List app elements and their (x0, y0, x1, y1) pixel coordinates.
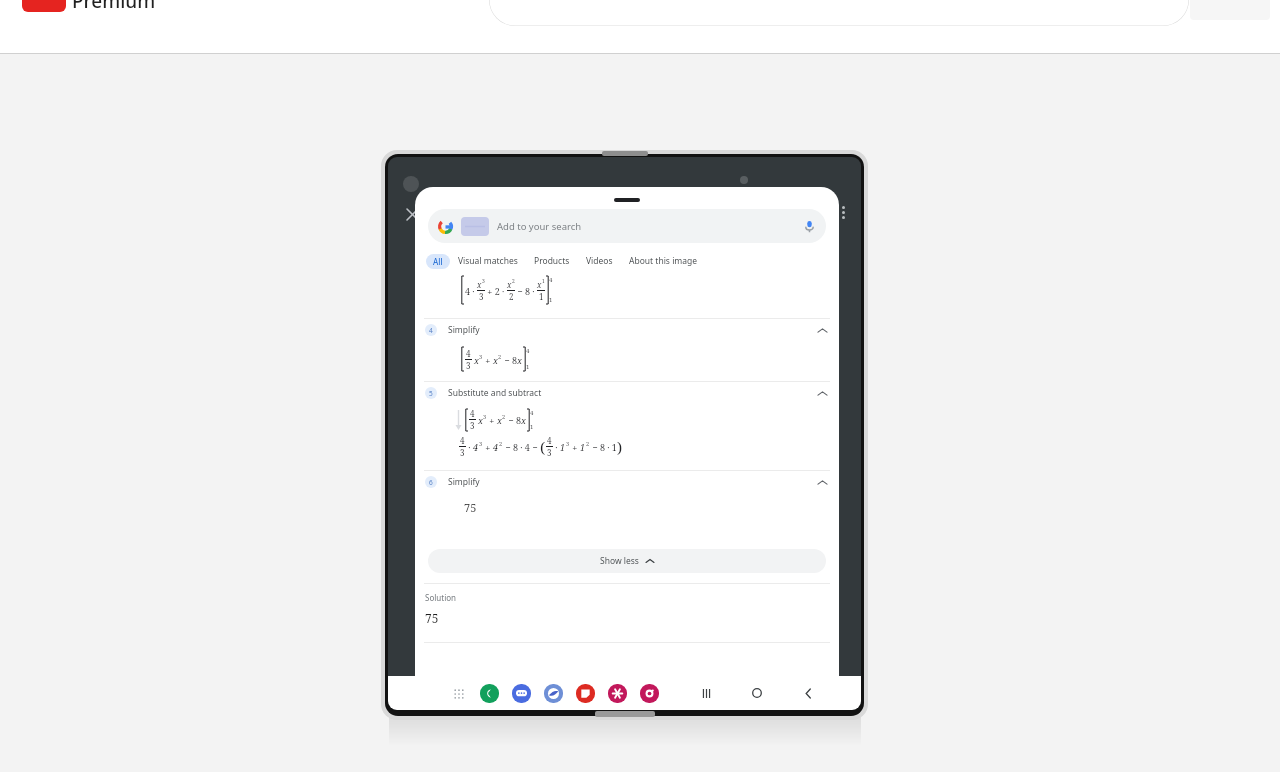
staticText: 1 (560, 441, 566, 453)
staticText: 2 (502, 413, 506, 421)
button[interactable]: Close (403, 205, 421, 223)
staticText: 1 (530, 423, 534, 431)
staticText: ) (617, 437, 623, 457)
staticText: Substitute and subtract (448, 387, 542, 399)
staticText: Visual matches (458, 255, 518, 267)
staticText: 2 (499, 440, 503, 448)
staticText: ( (540, 437, 546, 457)
staticText: 3 (483, 413, 487, 421)
button[interactable]: 4 (415, 319, 839, 341)
staticText: 4 (493, 441, 499, 453)
staticText: 6 (429, 478, 433, 487)
staticText: − 8 · (515, 285, 537, 297)
staticText: 4 (530, 409, 534, 417)
button[interactable]: More options (838, 202, 849, 223)
button[interactable]: Recents (696, 683, 716, 703)
staticText: + 2 · (485, 285, 507, 297)
staticText: − 8 · 1 (590, 441, 617, 453)
staticText: 75 (425, 610, 439, 626)
staticText: 4 (466, 348, 471, 359)
staticText: 1 (539, 291, 544, 302)
button[interactable]: App (480, 684, 499, 703)
button[interactable]: Products (526, 252, 578, 270)
button[interactable]: 5 (415, 382, 839, 404)
staticText: 3 (547, 447, 552, 458)
staticText: 4 (460, 435, 465, 446)
staticText: About this image (629, 255, 698, 267)
staticText: 2 (509, 291, 514, 302)
staticText: 1 (526, 363, 530, 371)
staticText: 4 (429, 326, 433, 335)
button[interactable] (489, 0, 1189, 26)
button[interactable]: App (544, 684, 563, 703)
staticText: Videos (586, 255, 613, 267)
staticText: Simplify (448, 324, 480, 336)
staticText: 3 (482, 278, 485, 285)
staticText: 4 (549, 276, 553, 284)
staticText: x (474, 354, 479, 366)
staticText: Premium (72, 0, 156, 14)
button[interactable]: Show less (428, 549, 826, 573)
staticText: 4 (547, 435, 552, 446)
staticText: 2 (512, 278, 515, 285)
button[interactable]: All apps (450, 685, 467, 702)
staticText: 2 (498, 353, 502, 361)
staticText: + (570, 441, 580, 453)
staticText: − 8 (502, 354, 517, 366)
staticText: x (517, 354, 522, 366)
staticText: 3 (479, 353, 483, 361)
button[interactable]: App (608, 684, 627, 703)
staticText: Solution (425, 592, 456, 603)
staticText: x (521, 414, 526, 426)
staticText: x (477, 279, 482, 290)
staticText: Add to your search (497, 220, 582, 233)
staticText: · (553, 441, 560, 453)
staticText: 3 (466, 360, 471, 371)
staticText: 3 (566, 440, 570, 448)
staticText: + (483, 441, 493, 453)
staticText: x (507, 279, 512, 290)
staticText: · (466, 441, 473, 453)
button[interactable]: Videos (578, 252, 621, 270)
staticText: − 8 (506, 414, 521, 426)
staticText: 75 (464, 500, 477, 515)
staticText: Products (534, 255, 570, 267)
staticText: x (478, 414, 483, 426)
button[interactable]: Add to your search (428, 209, 826, 243)
button[interactable]: Back (798, 683, 818, 703)
staticText: − 8 · 4 − (503, 441, 540, 453)
button[interactable]: App (576, 684, 595, 703)
button[interactable]: About this image (621, 252, 706, 270)
button[interactable]: Drag handle (614, 198, 640, 202)
button[interactable]: App (640, 684, 659, 703)
button[interactable]: Lens (403, 176, 419, 192)
staticText: 1 (542, 278, 545, 285)
staticText: 4 (470, 408, 475, 419)
staticText: x (537, 279, 542, 290)
staticText: 3 (479, 291, 484, 302)
button[interactable]: All (426, 254, 450, 269)
button[interactable]: Home (747, 683, 767, 703)
button[interactable]: App (512, 684, 531, 703)
staticText: + (483, 354, 493, 366)
button[interactable]: 6 (415, 471, 839, 493)
staticText: 1 (580, 441, 586, 453)
staticText: 1 (549, 296, 553, 304)
staticText: 3 (460, 447, 465, 458)
staticText: 3 (479, 440, 483, 448)
staticText: 4 (473, 441, 479, 453)
staticText: 4 · (465, 285, 477, 297)
staticText: Simplify (448, 476, 480, 488)
staticText: 2 (586, 440, 590, 448)
staticText: 4 (526, 347, 530, 355)
staticText: + (487, 414, 497, 426)
staticText: Show less (600, 555, 639, 567)
button[interactable]: Visual matches (450, 252, 526, 270)
staticText: All (433, 256, 443, 267)
staticText: 3 (470, 420, 475, 431)
staticText: x (493, 354, 498, 366)
staticText: x (497, 414, 502, 426)
button[interactable]: YouTube Premium home (22, 0, 156, 14)
staticText: 5 (429, 389, 433, 398)
